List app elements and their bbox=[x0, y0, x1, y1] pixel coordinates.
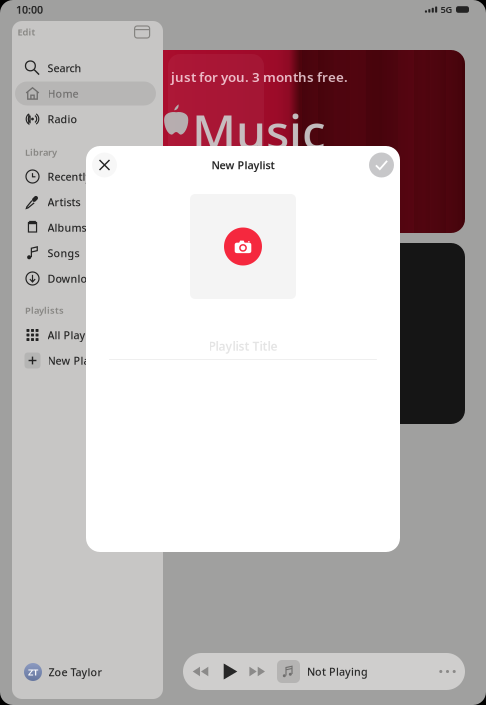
staticText: Songs bbox=[47, 246, 79, 260]
staticText: New Playlist bbox=[211, 158, 274, 172]
button[interactable]: New Playlist bbox=[15, 348, 156, 372]
staticText: New Playlist bbox=[47, 353, 110, 368]
button[interactable]: Artists bbox=[15, 190, 156, 214]
button[interactable]: Albums bbox=[15, 215, 156, 239]
staticText: Radio bbox=[47, 112, 77, 126]
staticText: ZT bbox=[28, 666, 38, 678]
staticText: Playlists bbox=[25, 304, 64, 316]
staticText: Zoe Taylor bbox=[48, 665, 102, 679]
button[interactable]: Close bbox=[92, 152, 117, 177]
staticText: Downloaded bbox=[47, 271, 113, 286]
button[interactable]: Recently Added bbox=[15, 164, 156, 188]
button[interactable]: Hide Sidebar bbox=[132, 23, 153, 41]
staticText: Edit bbox=[18, 26, 36, 38]
button[interactable]: Previous bbox=[187, 656, 214, 687]
staticText: All Playlists bbox=[47, 328, 105, 342]
staticText: Albums bbox=[47, 220, 86, 235]
button[interactable]: Not Playing bbox=[277, 656, 427, 686]
staticText: 10:00 bbox=[16, 2, 43, 17]
staticText: Recently Added bbox=[47, 169, 128, 184]
staticText: just for you. 3 months free. bbox=[171, 68, 348, 86]
button[interactable]: ZT bbox=[12, 657, 163, 687]
button[interactable]: Play bbox=[217, 656, 243, 687]
button[interactable]: Choose Artwork bbox=[190, 194, 296, 299]
button[interactable]: More bbox=[426, 653, 468, 690]
button[interactable]: Songs bbox=[15, 241, 156, 265]
staticText: 5G bbox=[441, 3, 453, 16]
staticText: Home bbox=[47, 86, 78, 101]
staticText: Playlist Title bbox=[208, 338, 277, 354]
button[interactable]: Search bbox=[15, 56, 156, 80]
staticText: Search bbox=[47, 61, 81, 75]
staticText: Library bbox=[25, 146, 57, 158]
button[interactable]: Edit bbox=[15, 23, 39, 41]
button[interactable]: Radio bbox=[15, 107, 156, 131]
button[interactable]: Done bbox=[369, 152, 394, 177]
button[interactable]: All Playlists bbox=[15, 323, 156, 347]
button[interactable]: Downloaded bbox=[15, 266, 156, 290]
button[interactable]: Next bbox=[244, 656, 271, 687]
staticText: Music bbox=[192, 99, 326, 163]
button[interactable]: Home bbox=[15, 81, 156, 105]
staticText: Artists bbox=[47, 195, 80, 209]
staticText: Not Playing bbox=[307, 664, 368, 679]
